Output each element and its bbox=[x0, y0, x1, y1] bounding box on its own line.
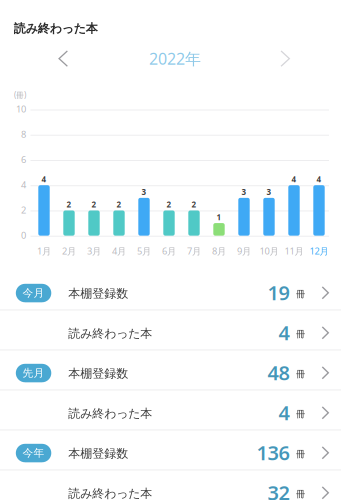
staticText: 4 bbox=[21, 178, 26, 191]
staticText: 読み終わった本 bbox=[68, 326, 152, 341]
staticText: 4月 bbox=[112, 245, 126, 257]
staticText: 7月 bbox=[187, 245, 201, 257]
staticText: 5月 bbox=[137, 245, 151, 257]
staticText: 19 bbox=[267, 279, 289, 306]
staticText: 4 bbox=[278, 319, 289, 346]
staticText: 冊 bbox=[296, 368, 305, 380]
staticText: 1 bbox=[216, 212, 221, 222]
staticText: 冊 bbox=[296, 488, 305, 500]
staticText: 0 bbox=[21, 229, 26, 241]
staticText: 2 bbox=[166, 199, 171, 210]
staticText: (冊) bbox=[14, 90, 26, 100]
staticText: 2 bbox=[116, 199, 121, 210]
staticText: 本棚登録数 bbox=[68, 366, 128, 381]
staticText: 8月 bbox=[212, 245, 226, 257]
staticText: 10 bbox=[16, 103, 26, 115]
staticText: 冊 bbox=[296, 328, 305, 340]
staticText: 12月 bbox=[309, 245, 328, 257]
staticText: 4 bbox=[291, 174, 296, 184]
staticText: 6月 bbox=[162, 245, 176, 257]
staticText: 2 bbox=[191, 199, 196, 210]
button[interactable]: 今年 bbox=[0, 431, 349, 470]
staticText: 2 bbox=[91, 199, 96, 210]
staticText: 3月 bbox=[87, 245, 101, 257]
staticText: 今月 bbox=[23, 286, 45, 300]
staticText: 読み終わった本 bbox=[14, 21, 98, 36]
button[interactable]: 今月 bbox=[0, 271, 349, 310]
staticText: 4 bbox=[41, 174, 46, 184]
staticText: 2 bbox=[21, 204, 26, 216]
staticText: 先月 bbox=[23, 366, 45, 380]
staticText: 読み終わった本 bbox=[68, 486, 152, 500]
staticText: 8 bbox=[21, 128, 26, 140]
staticText: 読み終わった本 bbox=[68, 406, 152, 421]
button[interactable]: 先月 bbox=[0, 351, 349, 390]
button[interactable]: 読み終わった本 bbox=[0, 471, 349, 500]
staticText: 2022年 bbox=[149, 48, 201, 69]
button[interactable]: Previous year bbox=[43, 39, 83, 79]
staticText: 10月 bbox=[259, 245, 278, 257]
staticText: 136 bbox=[256, 439, 289, 466]
staticText: 1月 bbox=[37, 245, 51, 257]
staticText: 3 bbox=[266, 186, 271, 197]
staticText: 本棚登録数 bbox=[68, 446, 128, 461]
button[interactable]: 読み終わった本 bbox=[0, 391, 349, 430]
staticText: 3 bbox=[141, 186, 146, 197]
staticText: 4 bbox=[278, 399, 289, 426]
staticText: 9月 bbox=[237, 245, 251, 257]
staticText: 冊 bbox=[296, 408, 305, 420]
staticText: 本棚登録数 bbox=[68, 286, 128, 301]
staticText: 冊 bbox=[296, 448, 305, 460]
staticText: 48 bbox=[267, 359, 289, 386]
staticText: 今年 bbox=[23, 446, 45, 460]
button[interactable]: 読み終わった本 bbox=[0, 311, 349, 350]
staticText: 11月 bbox=[284, 245, 303, 257]
staticText: 4 bbox=[316, 174, 321, 184]
button[interactable]: Next year bbox=[265, 39, 305, 79]
staticText: 冊 bbox=[296, 288, 305, 300]
staticText: 32 bbox=[267, 479, 289, 500]
staticText: 3 bbox=[241, 186, 246, 197]
staticText: 2 bbox=[66, 199, 71, 210]
staticText: 2月 bbox=[62, 245, 76, 257]
staticText: 6 bbox=[21, 153, 26, 166]
